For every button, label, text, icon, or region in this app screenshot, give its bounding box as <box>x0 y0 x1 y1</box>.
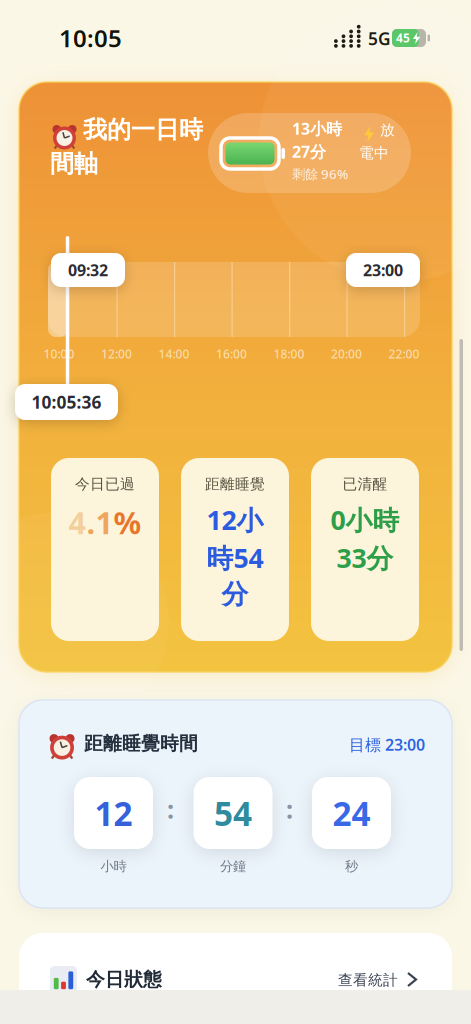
staticText: 今日已過 <box>75 475 135 493</box>
staticText: 10:00 <box>43 346 74 362</box>
staticText: : <box>167 792 174 826</box>
staticText: 45 <box>396 30 410 46</box>
staticText: 12小 <box>206 502 263 537</box>
staticText: 放 <box>380 121 395 139</box>
staticText: 33分 <box>336 540 393 575</box>
staticText: 27分 <box>292 141 326 162</box>
staticText: 23:00 <box>363 259 403 281</box>
staticText: 12:00 <box>101 346 132 362</box>
staticText: 10:05:36 <box>31 390 101 413</box>
staticText: 20:00 <box>331 346 362 362</box>
staticText: 14:00 <box>158 346 189 362</box>
staticText: 13小時 <box>292 118 342 139</box>
staticText: 4 <box>68 502 86 543</box>
staticText: 距離睡覺時間 <box>84 732 198 755</box>
staticText: 10:05 <box>59 22 122 54</box>
staticText: 24 <box>332 791 370 835</box>
staticText: 22:00 <box>388 346 419 362</box>
staticText: 間軸 <box>50 149 98 178</box>
button[interactable]: 目標 23:00 <box>305 734 425 755</box>
staticText: 18:00 <box>273 346 304 362</box>
staticText: : <box>286 792 293 826</box>
staticText: 09:32 <box>68 259 108 281</box>
staticText: 分 <box>221 578 248 611</box>
staticText: 距離睡覺 <box>205 475 265 493</box>
staticText: 我的一日時 <box>83 115 203 144</box>
staticText: 秒 <box>345 858 358 874</box>
staticText: .1 <box>86 502 113 543</box>
staticText: 目標 23:00 <box>349 734 425 755</box>
staticText: 時54 <box>206 540 263 575</box>
staticText: 剩餘 96% <box>292 165 348 183</box>
staticText: 5G <box>368 27 391 50</box>
staticText: % <box>113 502 141 543</box>
staticText: 電中 <box>359 144 389 162</box>
staticText: 今日狀態 <box>86 968 162 991</box>
staticText: 查看統計 <box>338 971 398 989</box>
staticText: 分鐘 <box>220 858 246 874</box>
staticText: 小時 <box>100 858 126 874</box>
staticText: 已清醒 <box>342 475 387 493</box>
staticText: 54 <box>214 791 252 835</box>
button[interactable]: 今日狀態 <box>19 933 452 1024</box>
staticText: 12 <box>94 791 132 835</box>
staticText: 0小時 <box>330 502 399 537</box>
staticText: 16:00 <box>216 346 247 362</box>
